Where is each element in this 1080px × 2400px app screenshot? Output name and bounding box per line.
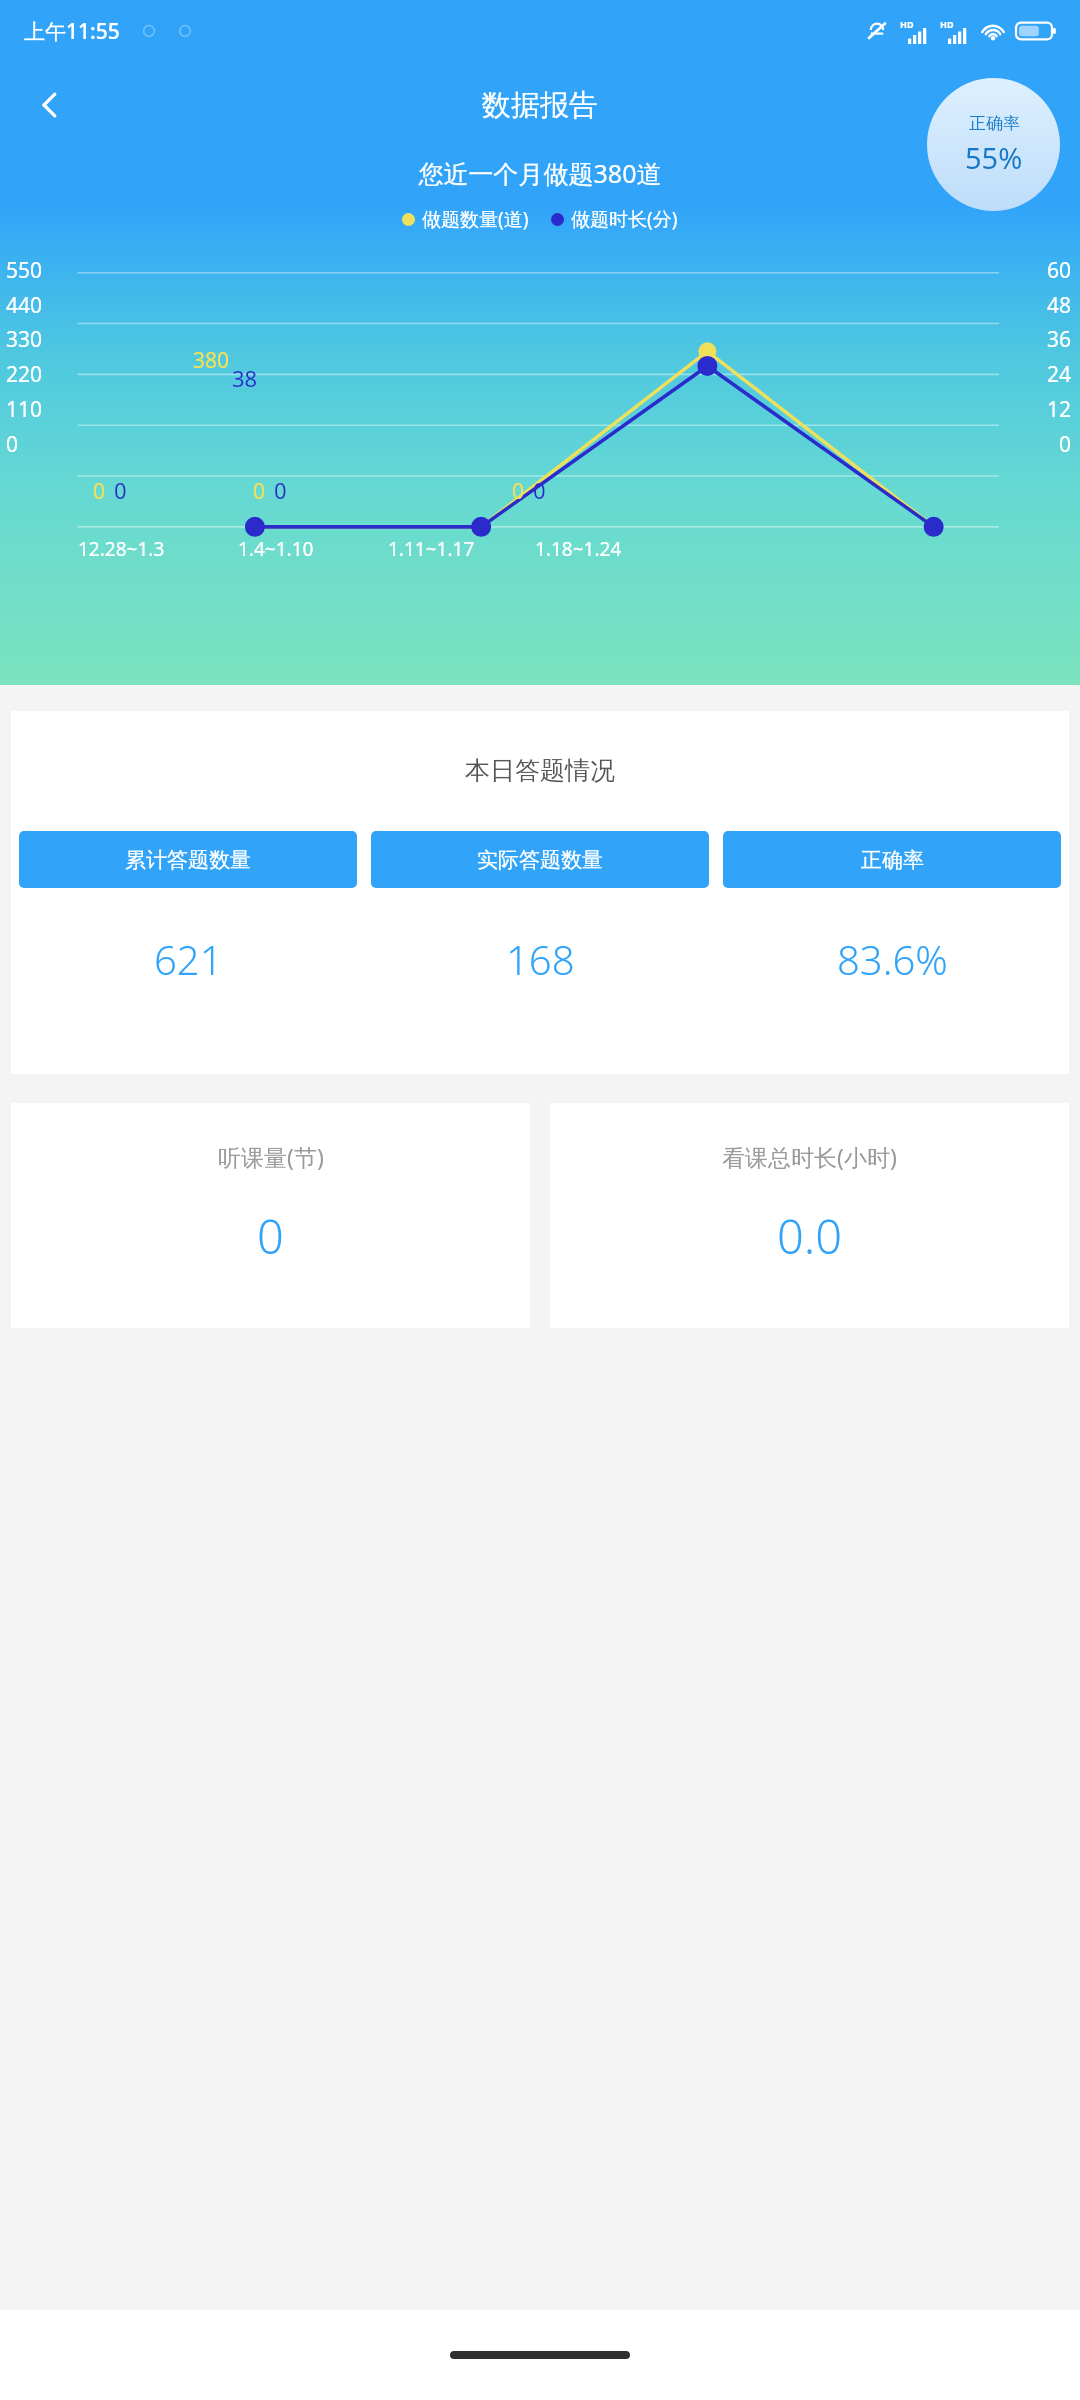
staticText: 60 bbox=[1047, 256, 1072, 285]
staticText: 0 bbox=[93, 477, 106, 506]
staticText: 83.6% bbox=[837, 932, 948, 986]
staticText: 38 bbox=[232, 363, 258, 393]
staticText: 220 bbox=[6, 360, 43, 389]
staticText: 0 bbox=[6, 430, 19, 459]
staticText: 1.4~1.10 bbox=[238, 536, 314, 562]
staticText: 1.11~1.17 bbox=[388, 536, 475, 562]
staticText: 听课量(节) bbox=[218, 1141, 324, 1172]
button[interactable]: Back bbox=[22, 77, 78, 133]
staticText: 380 bbox=[193, 346, 230, 375]
staticText: 上午11:55 bbox=[24, 17, 120, 46]
staticText: 36 bbox=[1047, 325, 1072, 354]
staticText: 0 bbox=[114, 475, 127, 505]
button[interactable]: 正确率 bbox=[723, 831, 1061, 888]
staticText: 0 bbox=[253, 477, 266, 506]
staticText: HD bbox=[900, 18, 914, 30]
button[interactable]: 实际答题数量 bbox=[371, 831, 709, 888]
staticText: 12 bbox=[1047, 395, 1072, 424]
button[interactable]: 听课量(节) bbox=[11, 1103, 530, 1328]
staticText: 您近一个月做题380道 bbox=[0, 156, 1080, 190]
staticText: 0 bbox=[1059, 430, 1072, 459]
button[interactable]: 累计答题数量 bbox=[19, 831, 357, 888]
staticText: 累计答题数量 bbox=[125, 847, 251, 873]
staticText: 330 bbox=[6, 325, 43, 354]
staticText: 1.18~1.24 bbox=[535, 536, 622, 562]
staticText: 做题数量(道) bbox=[422, 206, 529, 232]
staticText: 正确率 bbox=[861, 847, 924, 873]
staticText: 55% bbox=[965, 138, 1023, 177]
staticText: HD bbox=[940, 18, 954, 30]
staticText: 看课总时长(小时) bbox=[722, 1141, 897, 1172]
staticText: 本日答题情况 bbox=[11, 755, 1069, 786]
staticText: 0 bbox=[257, 1204, 284, 1268]
staticText: 数据报告 bbox=[482, 87, 598, 124]
staticText: 550 bbox=[6, 256, 43, 285]
staticText: 48 bbox=[1047, 291, 1072, 320]
staticText: 正确率 bbox=[969, 113, 1020, 134]
staticText: 110 bbox=[6, 395, 43, 424]
staticText: 0 bbox=[512, 477, 525, 506]
staticText: 24 bbox=[1047, 360, 1072, 389]
staticText: 0 bbox=[274, 475, 287, 505]
staticText: 实际答题数量 bbox=[477, 847, 603, 873]
staticText: 做题时长(分) bbox=[571, 206, 678, 232]
staticText: 0.0 bbox=[777, 1204, 843, 1268]
staticText: 168 bbox=[506, 932, 575, 986]
staticText: 440 bbox=[6, 291, 43, 320]
staticText: 12.28~1.3 bbox=[78, 536, 165, 562]
staticText: 0 bbox=[533, 475, 546, 505]
button[interactable]: 正确率 bbox=[927, 78, 1060, 211]
staticText: 621 bbox=[154, 932, 223, 986]
button[interactable]: 看课总时长(小时) bbox=[550, 1103, 1069, 1328]
